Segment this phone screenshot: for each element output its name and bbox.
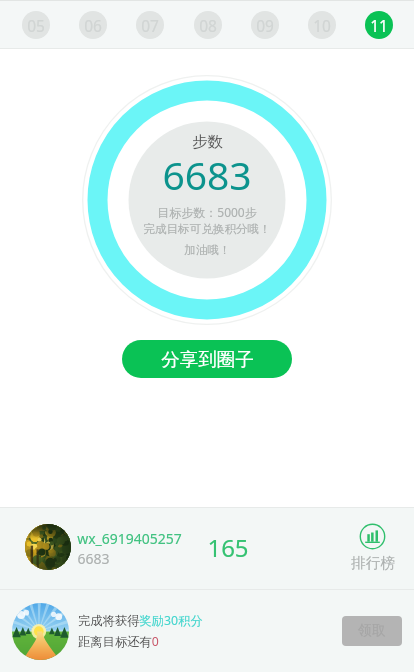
staticText: 距离目标还有0 xyxy=(78,633,159,650)
staticText: 领取 xyxy=(358,622,386,640)
button[interactable]: 用户头像 xyxy=(0,508,414,589)
other: 用户头像 xyxy=(25,524,71,570)
button[interactable]: 11 xyxy=(365,11,393,39)
staticText: wx_6919405257 xyxy=(77,529,182,548)
staticText: 09 xyxy=(256,15,274,36)
button[interactable]: 05 xyxy=(22,11,50,39)
staticText: 排行榜 xyxy=(351,554,395,572)
staticText: 加油哦！ xyxy=(184,243,231,258)
staticText: 完成目标可兑换积分哦！ xyxy=(143,222,271,237)
button[interactable]: 奖励图标 xyxy=(0,590,414,672)
button[interactable]: 分享到圈子 xyxy=(122,340,292,378)
staticText: 步数 xyxy=(192,132,223,152)
staticText: 06 xyxy=(84,15,102,36)
staticText: 分享到圈子 xyxy=(161,348,254,371)
button[interactable]: 10 xyxy=(308,11,336,39)
staticText: 07 xyxy=(141,15,159,36)
staticText: 10 xyxy=(313,15,331,36)
staticText: 完成将获得奖励30积分 xyxy=(78,612,203,629)
other: 排行榜 xyxy=(360,524,385,549)
staticText: 08 xyxy=(199,15,217,36)
staticText: 目标步数：5000步 xyxy=(157,204,257,220)
button[interactable]: 排行榜 xyxy=(349,521,396,579)
button[interactable]: 领取 xyxy=(342,616,402,646)
button[interactable]: 08 xyxy=(194,11,222,39)
other: 奖励图标 xyxy=(12,603,69,660)
staticText: 6683 xyxy=(162,148,252,201)
staticText: 05 xyxy=(27,15,45,36)
button[interactable]: 06 xyxy=(79,11,107,39)
button[interactable]: 07 xyxy=(136,11,164,39)
staticText: 165 xyxy=(207,531,249,564)
staticText: 11 xyxy=(370,15,388,36)
staticText: 6683 xyxy=(77,549,110,568)
button[interactable]: 09 xyxy=(251,11,279,39)
